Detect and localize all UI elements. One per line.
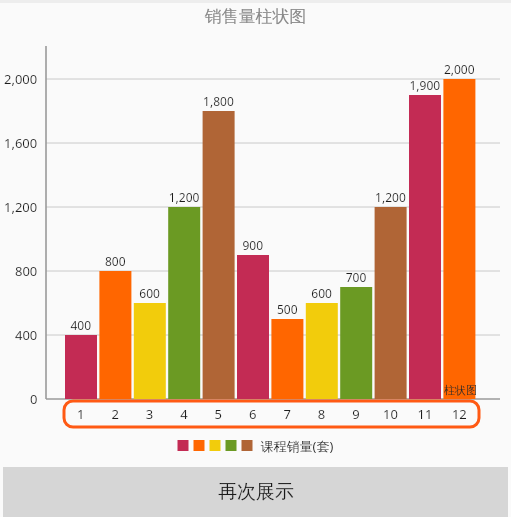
staticText: 再次展示 (218, 480, 294, 504)
button[interactable]: 再次展示 (3, 467, 508, 517)
staticText: 销售量柱状图 (0, 6, 511, 27)
